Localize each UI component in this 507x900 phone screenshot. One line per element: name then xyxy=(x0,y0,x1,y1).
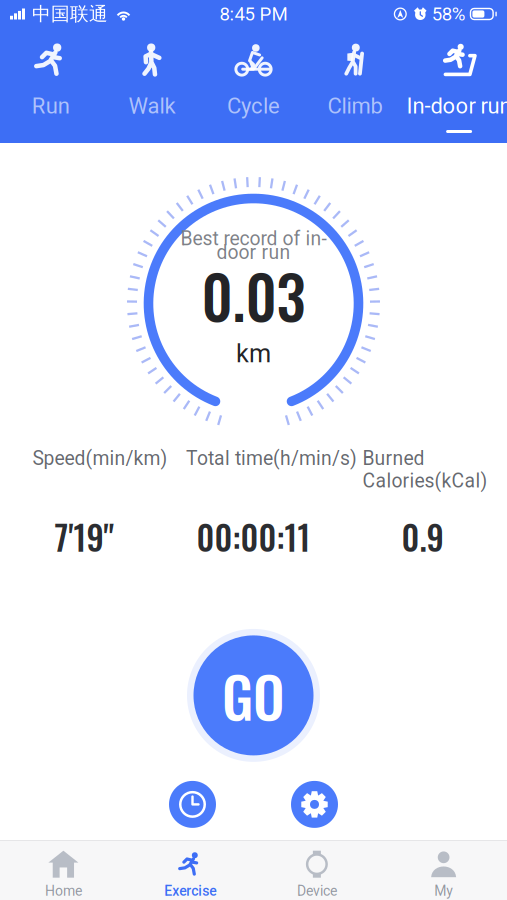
staticText: Speed(min/km) xyxy=(32,447,167,470)
staticText: km xyxy=(236,339,271,368)
button[interactable]: GO xyxy=(183,625,323,765)
button[interactable]: Settings xyxy=(286,776,342,832)
staticText: Climb xyxy=(327,93,382,119)
staticText: Home xyxy=(45,883,82,899)
button[interactable]: Run xyxy=(0,28,101,143)
button[interactable]: My xyxy=(380,841,507,900)
staticText: In-door run xyxy=(407,93,507,119)
button[interactable]: In-door run xyxy=(406,28,507,143)
staticText: Device xyxy=(297,883,337,899)
staticText: Run xyxy=(32,93,70,119)
button[interactable]: Walk xyxy=(101,28,203,143)
staticText: Cycle xyxy=(227,93,280,119)
staticText: 0.9 xyxy=(401,512,443,561)
button[interactable]: Device xyxy=(253,841,380,900)
staticText: Best record of in- xyxy=(180,227,326,250)
staticText: Total time(h/min/s) xyxy=(186,447,357,470)
staticText: Exercise xyxy=(164,883,216,899)
staticText: GO xyxy=(222,654,285,737)
staticText: 0.03 xyxy=(201,252,305,339)
staticText: 7'19" xyxy=(54,512,114,561)
staticText: 00:00:11 xyxy=(196,512,310,561)
staticText: Burned Calories(kCal) xyxy=(362,447,487,492)
staticText: 58% xyxy=(432,3,466,25)
staticText: 8:45 PM xyxy=(219,3,287,25)
button[interactable]: Cycle xyxy=(203,28,304,143)
staticText: 中国联通 xyxy=(32,2,108,26)
button[interactable]: Climb xyxy=(304,28,406,143)
button[interactable]: History xyxy=(164,776,220,832)
button[interactable]: Home xyxy=(0,841,127,900)
staticText: My xyxy=(434,883,453,899)
staticText: Walk xyxy=(129,93,176,119)
button[interactable]: Exercise xyxy=(127,841,254,900)
staticText: door run xyxy=(216,241,290,264)
